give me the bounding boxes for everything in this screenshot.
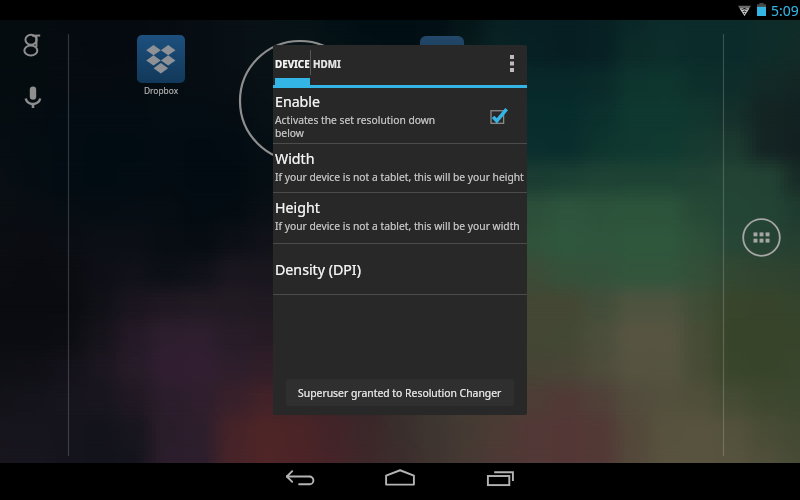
staticText: Height	[275, 198, 320, 217]
button[interactable]: DEVICE	[274, 45, 310, 78]
other: Battery	[757, 3, 766, 16]
button[interactable]: Enable	[273, 88, 527, 143]
staticText: If your device is not a tablet, this wil…	[275, 219, 527, 233]
staticText: Dropbox	[137, 85, 185, 96]
button[interactable]: Home	[382, 464, 418, 500]
button[interactable]: Recents	[482, 464, 518, 500]
staticText: Width	[275, 149, 315, 168]
staticText: Superuser granted to Resolution Changer	[298, 386, 502, 400]
button[interactable]: Width	[273, 144, 527, 192]
button[interactable]: Voice Search	[25, 86, 41, 108]
button[interactable]: Back	[282, 464, 318, 500]
staticText: DEVICE	[275, 58, 310, 71]
button[interactable]: HDMI	[311, 45, 343, 78]
staticText: If your device is not a tablet, this wil…	[275, 170, 527, 184]
button[interactable]	[137, 35, 185, 83]
staticText: Enable	[275, 92, 321, 111]
button[interactable]: More options	[499, 49, 527, 77]
staticText: Activates the set resolution down below	[275, 113, 445, 140]
button[interactable]: Height	[273, 193, 527, 243]
staticText: HDMI	[313, 58, 341, 71]
button[interactable]: Density (DPI)	[273, 244, 527, 294]
staticText: Density (DPI)	[275, 260, 361, 279]
button[interactable]: Apps	[742, 218, 781, 257]
button[interactable]: Google Search	[24, 33, 42, 57]
staticText: 5:09	[771, 1, 799, 20]
other: Wi-Fi	[738, 3, 751, 16]
